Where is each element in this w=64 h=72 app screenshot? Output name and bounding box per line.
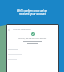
staticText: We'll confirm once we've — [17, 9, 47, 13]
staticText: Account verification — [13, 28, 31, 31]
staticText: Thanks, we've got your details — [18, 37, 47, 40]
staticText: received your account — [19, 12, 46, 16]
